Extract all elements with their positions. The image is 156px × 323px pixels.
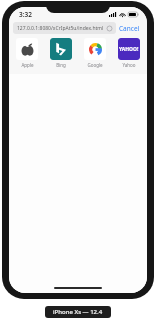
staticText: Google bbox=[87, 62, 103, 68]
button[interactable]: Clear text bbox=[107, 26, 112, 31]
staticText: YAHOO! bbox=[119, 46, 139, 53]
button[interactable]: iPhone Xs — 12.4 bbox=[45, 306, 111, 318]
button[interactable]: Google bbox=[83, 38, 107, 68]
staticText: Apple bbox=[21, 62, 34, 68]
button[interactable]: YAHOO! bbox=[117, 38, 141, 68]
staticText: Cancel bbox=[119, 24, 140, 33]
button[interactable]: Cancel bbox=[116, 23, 143, 34]
staticText: 3:32 bbox=[19, 10, 32, 19]
button[interactable]: 127.0.0.1:8080/xCrIpAt5u/index.html bbox=[13, 22, 116, 34]
button[interactable]: Bing bbox=[49, 38, 73, 68]
button[interactable]: Apple bbox=[15, 38, 39, 68]
staticText: Bing bbox=[56, 62, 66, 68]
staticText: Yahoo bbox=[122, 62, 136, 68]
staticText: 127.0.0.1:8080/xCrIpAt5u/index.html bbox=[17, 25, 107, 32]
staticText: iPhone Xs — 12.4 bbox=[53, 308, 103, 316]
